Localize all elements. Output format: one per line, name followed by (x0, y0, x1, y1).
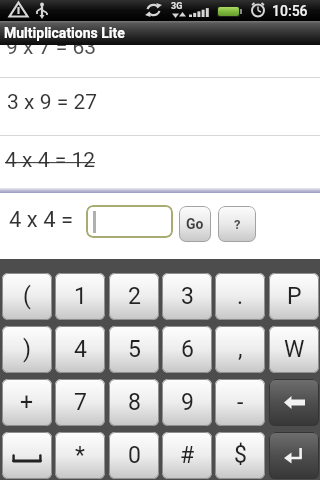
staticText: + (20, 389, 34, 416)
staticText: P (287, 283, 302, 310)
staticText: 4 (74, 336, 87, 363)
staticText: 7 (74, 389, 87, 416)
staticText: , (238, 336, 243, 363)
staticText: Multiplications Lite (4, 25, 125, 41)
button[interactable]: 5 (109, 326, 159, 373)
staticText: ) (23, 336, 32, 363)
staticText: - (237, 389, 244, 416)
button[interactable]: . (215, 273, 265, 320)
button[interactable] (269, 379, 319, 426)
button[interactable]: 6 (162, 326, 212, 373)
button[interactable]: # (162, 432, 212, 479)
button[interactable]: 7 (55, 379, 105, 426)
staticText: ? (234, 217, 241, 232)
button[interactable]: ) (2, 326, 52, 373)
staticText: . (237, 283, 244, 310)
staticText: 5 (128, 336, 141, 363)
button[interactable]: P (269, 273, 319, 320)
button[interactable]: ? (218, 206, 256, 242)
staticText: 8 (128, 389, 141, 416)
staticText: 0 (128, 442, 141, 469)
staticText: 3 (181, 283, 194, 310)
staticText: 4 x 4 = 12 (5, 148, 95, 173)
button[interactable]: ( (2, 273, 52, 320)
button[interactable]: 3 (162, 273, 212, 320)
staticText: 9 (181, 389, 194, 416)
button[interactable]: * (55, 432, 105, 479)
staticText: Go (186, 216, 204, 232)
staticText: * (75, 442, 85, 469)
button[interactable]: - (215, 379, 265, 426)
button[interactable]: 9 (162, 379, 212, 426)
staticText: 10:56 (272, 3, 308, 19)
staticText: 4 x 4 = (9, 207, 74, 233)
button[interactable]: 0 (109, 432, 159, 479)
button[interactable]: + (2, 379, 52, 426)
button[interactable] (86, 205, 173, 238)
button[interactable]: Go (179, 206, 211, 242)
button[interactable]: 1 (55, 273, 105, 320)
staticText: $ (234, 442, 247, 469)
button[interactable]: 2 (109, 273, 159, 320)
staticText: 3 x 9 = 27 (7, 90, 97, 115)
staticText: W (284, 336, 305, 363)
button[interactable]: , (215, 326, 265, 373)
staticText: 2 (128, 283, 141, 310)
button[interactable] (269, 432, 319, 479)
staticText: 1 (74, 283, 87, 310)
button[interactable]: 4 (55, 326, 105, 373)
staticText: # (180, 442, 195, 469)
staticText: 3G (171, 1, 183, 12)
button[interactable]: W (269, 326, 319, 373)
staticText: 6 (181, 336, 194, 363)
button[interactable]: 8 (109, 379, 159, 426)
staticText: 9 x 7 = 63 (6, 45, 96, 60)
button[interactable]: $ (215, 432, 265, 479)
staticText: ( (23, 283, 31, 310)
button[interactable] (2, 432, 52, 479)
